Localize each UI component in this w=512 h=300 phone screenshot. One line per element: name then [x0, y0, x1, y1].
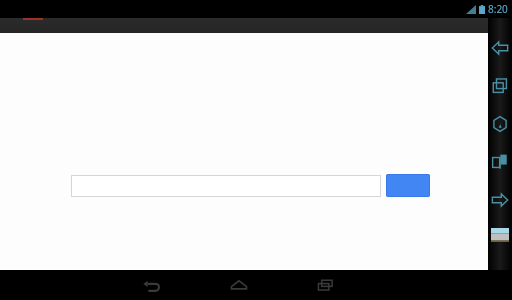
button[interactable]: Home	[219, 270, 259, 300]
button[interactable]: Home	[490, 114, 510, 134]
button[interactable]: Text input field	[71, 175, 381, 197]
button[interactable]: Submit	[386, 174, 430, 197]
button[interactable]: Back	[132, 270, 172, 300]
staticText: 8:20	[488, 2, 508, 16]
button[interactable]: Forward	[490, 190, 510, 210]
button[interactable]: Tabs	[490, 76, 510, 96]
button[interactable]: Recents	[306, 270, 346, 300]
button[interactable]: Bookmarks	[490, 152, 510, 172]
button[interactable]: Back	[490, 38, 510, 58]
button[interactable]: Recent window	[491, 228, 509, 242]
